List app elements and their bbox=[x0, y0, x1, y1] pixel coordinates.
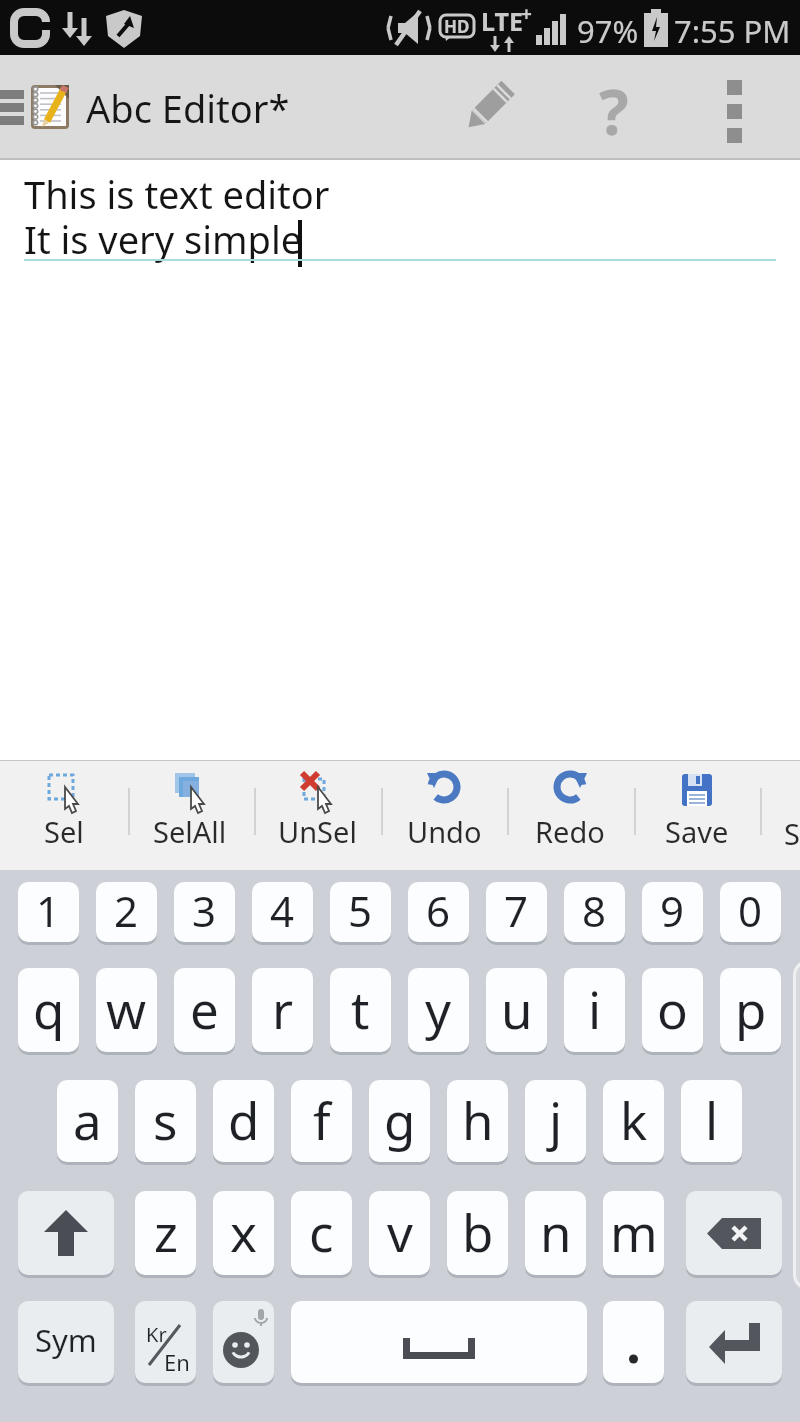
staticText: Save bbox=[665, 812, 729, 851]
button[interactable]: 5 bbox=[330, 882, 391, 942]
staticText: r bbox=[272, 974, 294, 1043]
staticText: 97% bbox=[577, 10, 639, 52]
staticText: 8 bbox=[582, 882, 607, 939]
staticText: It is very simple bbox=[24, 213, 303, 265]
staticText: e bbox=[190, 974, 219, 1043]
staticText: q bbox=[33, 974, 65, 1043]
staticText: 9 bbox=[660, 882, 685, 939]
button[interactable]: 4 bbox=[252, 882, 313, 942]
staticText: UnSel bbox=[278, 812, 357, 851]
button[interactable]: a bbox=[57, 1080, 118, 1162]
button[interactable]: t bbox=[330, 968, 391, 1052]
button[interactable]: p bbox=[720, 968, 781, 1052]
button[interactable]: f bbox=[291, 1080, 352, 1162]
staticText: n bbox=[540, 1197, 572, 1266]
staticText: 0 bbox=[738, 882, 763, 939]
staticText: u bbox=[501, 974, 533, 1043]
staticText: 2 bbox=[114, 882, 139, 939]
staticText: + bbox=[521, 1, 532, 27]
staticText: 3 bbox=[192, 882, 217, 939]
button[interactable]: x bbox=[213, 1191, 274, 1275]
staticText: ? bbox=[599, 69, 629, 145]
button[interactable]: s bbox=[135, 1080, 196, 1162]
button[interactable] bbox=[706, 75, 762, 147]
staticText: w bbox=[106, 974, 147, 1043]
staticText: b bbox=[462, 1197, 494, 1266]
staticText: s bbox=[153, 1085, 178, 1154]
staticText: 5 bbox=[348, 882, 373, 939]
staticText: p bbox=[735, 974, 767, 1043]
button[interactable]: e bbox=[174, 968, 235, 1052]
button[interactable]: 0 bbox=[720, 882, 781, 942]
staticText: j bbox=[549, 1085, 563, 1154]
staticText: i bbox=[588, 974, 602, 1043]
button[interactable]: o bbox=[642, 968, 703, 1052]
button[interactable]: c bbox=[291, 1191, 352, 1275]
staticText: Kr bbox=[146, 1321, 167, 1348]
button[interactable]: m bbox=[603, 1191, 664, 1275]
button[interactable] bbox=[18, 1191, 114, 1275]
staticText: o bbox=[657, 974, 688, 1043]
button[interactable]: 8 bbox=[564, 882, 625, 942]
button[interactable] bbox=[603, 1301, 664, 1383]
button[interactable]: r bbox=[252, 968, 313, 1052]
button[interactable]: k bbox=[603, 1080, 664, 1162]
staticText: Sym bbox=[35, 1319, 97, 1361]
staticText: 6 bbox=[426, 882, 451, 939]
button[interactable]: b bbox=[447, 1191, 508, 1275]
staticText: 1 bbox=[36, 882, 61, 939]
button[interactable]: 6 bbox=[408, 882, 469, 942]
button[interactable]: d bbox=[213, 1080, 274, 1162]
button[interactable]: n bbox=[525, 1191, 586, 1275]
staticText: t bbox=[351, 974, 370, 1043]
button[interactable] bbox=[686, 1191, 782, 1275]
staticText: x bbox=[230, 1197, 257, 1266]
staticText: En bbox=[164, 1347, 190, 1377]
staticText: f bbox=[313, 1085, 331, 1154]
button[interactable]: ? bbox=[586, 69, 642, 145]
button[interactable]: u bbox=[486, 968, 547, 1052]
staticText: 4 bbox=[270, 882, 295, 939]
staticText: k bbox=[620, 1085, 648, 1154]
staticText: LTE bbox=[481, 4, 523, 38]
button[interactable]: Kr bbox=[135, 1301, 196, 1383]
button[interactable]: Sym bbox=[18, 1301, 114, 1383]
staticText: 7:55 PM bbox=[674, 10, 791, 52]
staticText: SelAll bbox=[153, 812, 227, 851]
button[interactable]: SelAll bbox=[127, 771, 253, 863]
button[interactable]: j bbox=[525, 1080, 586, 1162]
button[interactable]: 9 bbox=[642, 882, 703, 942]
button[interactable]: v bbox=[369, 1191, 430, 1275]
button[interactable]: Save bbox=[634, 771, 760, 863]
button[interactable]: w bbox=[96, 968, 157, 1052]
button[interactable] bbox=[291, 1301, 587, 1383]
staticText: 7 bbox=[504, 882, 529, 939]
button[interactable]: Redo bbox=[507, 771, 633, 863]
button[interactable]: 2 bbox=[96, 882, 157, 942]
button[interactable]: l bbox=[681, 1080, 742, 1162]
button[interactable]: 1 bbox=[18, 882, 79, 942]
button[interactable]: UnSel bbox=[254, 771, 380, 863]
button[interactable]: Undo bbox=[381, 771, 507, 863]
button[interactable] bbox=[213, 1301, 274, 1383]
staticText: l bbox=[705, 1085, 719, 1154]
button[interactable] bbox=[458, 77, 518, 137]
button[interactable] bbox=[686, 1301, 782, 1383]
staticText: z bbox=[154, 1197, 178, 1266]
staticText: v bbox=[387, 1197, 413, 1266]
button[interactable]: q bbox=[18, 968, 79, 1052]
button[interactable]: g bbox=[369, 1080, 430, 1162]
staticText: c bbox=[309, 1197, 334, 1266]
staticText: Redo bbox=[535, 812, 605, 851]
button[interactable]: 7 bbox=[486, 882, 547, 942]
button[interactable]: i bbox=[564, 968, 625, 1052]
button[interactable]: h bbox=[447, 1080, 508, 1162]
staticText: d bbox=[228, 1085, 260, 1154]
staticText: a bbox=[73, 1085, 102, 1154]
staticText: Undo bbox=[407, 812, 482, 851]
staticText: HD bbox=[444, 15, 470, 38]
button[interactable]: Sel bbox=[1, 771, 127, 863]
button[interactable]: z bbox=[135, 1191, 196, 1275]
button[interactable]: 3 bbox=[174, 882, 235, 942]
button[interactable]: y bbox=[408, 968, 469, 1052]
